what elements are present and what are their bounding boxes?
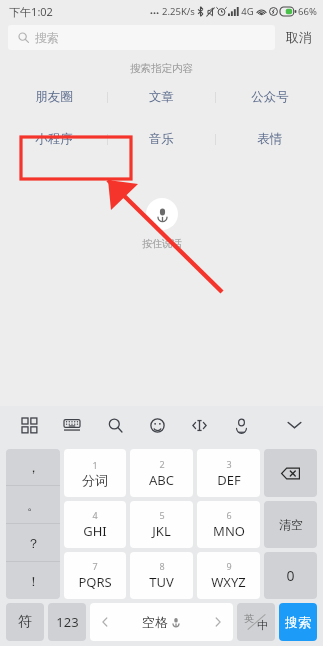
staticText: MNO — [213, 522, 245, 540]
button[interactable]: 取消 — [283, 25, 315, 49]
staticText: GHI — [83, 522, 107, 540]
button[interactable]: 123 — [48, 603, 86, 641]
staticText: 小程序 — [35, 131, 73, 147]
staticText: 66% — [298, 5, 317, 18]
staticText: ， — [27, 459, 40, 475]
staticText: 下午1:02 — [9, 4, 53, 19]
button[interactable]: 8 — [130, 552, 193, 599]
staticText: 0 — [286, 566, 295, 585]
button[interactable]: 4 — [64, 501, 126, 548]
staticText: 6 — [226, 509, 232, 521]
button[interactable]: 5 — [130, 501, 193, 548]
staticText: 中 — [257, 618, 268, 632]
button[interactable]: 3 — [197, 449, 260, 497]
button[interactable]: 小程序 — [0, 131, 107, 147]
staticText: 5 — [159, 509, 165, 521]
staticText: 搜索 — [35, 30, 59, 45]
button[interactable]: Hold to talk — [146, 198, 178, 230]
staticText: JKL — [152, 522, 171, 540]
staticText: 表情 — [257, 131, 282, 147]
button[interactable]: 2 — [130, 449, 193, 497]
staticText: 3 — [226, 458, 232, 470]
button[interactable]: Move cursor — [184, 410, 214, 440]
staticText: 音乐 — [149, 131, 174, 147]
staticText: ！ — [27, 573, 40, 589]
button[interactable]: 符 — [6, 603, 44, 641]
button[interactable]: 1 — [64, 449, 126, 497]
staticText: 公众号 — [251, 89, 289, 105]
staticText: ？ — [27, 535, 40, 551]
staticText: DEF — [217, 471, 241, 489]
staticText: 清空 — [279, 517, 303, 532]
staticText: 1 — [92, 459, 98, 471]
button[interactable]: 公众号 — [216, 89, 323, 105]
button[interactable]: 音乐 — [108, 131, 215, 147]
staticText: 4G — [241, 5, 254, 18]
button[interactable]: 9 — [197, 552, 260, 599]
button[interactable]: 7 — [64, 552, 126, 599]
button[interactable]: 。 — [6, 486, 60, 523]
staticText: 朋友圈 — [35, 89, 73, 105]
button[interactable]: 朋友圈 — [0, 89, 107, 105]
button[interactable]: 搜索 — [8, 25, 275, 50]
button[interactable]: ！ — [6, 562, 60, 599]
staticText: 2 — [159, 458, 165, 470]
button[interactable]: Keyboard — [57, 410, 87, 440]
button[interactable]: Hide keyboard — [279, 410, 309, 440]
staticText: 文章 — [149, 89, 174, 105]
staticText: 搜索指定内容 — [130, 62, 193, 75]
staticText: ABC — [149, 471, 174, 489]
button[interactable]: 表情 — [216, 131, 323, 147]
staticText: 空格 — [142, 614, 168, 630]
button[interactable]: Emoji — [142, 410, 172, 440]
staticText: 分词 — [82, 472, 108, 488]
button[interactable]: ？ — [6, 524, 60, 561]
button[interactable]: Switch language — [237, 603, 275, 641]
staticText: 4 — [92, 509, 98, 521]
staticText: 123 — [56, 613, 79, 631]
button[interactable]: Apps — [14, 410, 44, 440]
staticText: 9 — [226, 560, 232, 572]
staticText: PQRS — [78, 573, 112, 591]
button[interactable]: 6 — [197, 501, 260, 548]
staticText: 8 — [159, 560, 165, 572]
button[interactable]: 文章 — [108, 89, 215, 105]
staticText: 2.25K/s — [162, 5, 195, 18]
button[interactable]: Search — [100, 410, 130, 440]
button[interactable]: 清空 — [264, 501, 317, 548]
staticText: 取消 — [286, 29, 312, 45]
staticText: 符 — [18, 613, 32, 631]
button[interactable]: Delete — [264, 449, 317, 497]
button[interactable]: 0 — [264, 552, 317, 599]
button[interactable]: ， — [6, 449, 60, 485]
staticText: 按住说话 — [142, 237, 182, 250]
staticText: 。 — [27, 497, 40, 513]
staticText: TUV — [149, 573, 174, 591]
staticText: 搜索 — [285, 614, 311, 630]
button[interactable]: Voice input — [226, 410, 256, 440]
staticText: 英 — [244, 612, 254, 625]
button[interactable]: 搜索 — [279, 603, 317, 641]
staticText: WXYZ — [211, 573, 246, 591]
staticText: 7 — [92, 560, 98, 572]
button[interactable]: 空格 — [90, 603, 233, 641]
